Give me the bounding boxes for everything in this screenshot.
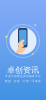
staticText: 专业大宗商品资讯服务平台	[5, 74, 41, 78]
staticText: 数据 · 价格 · 行情一手掌握	[5, 79, 41, 83]
staticText: 卓创资讯	[7, 65, 39, 75]
